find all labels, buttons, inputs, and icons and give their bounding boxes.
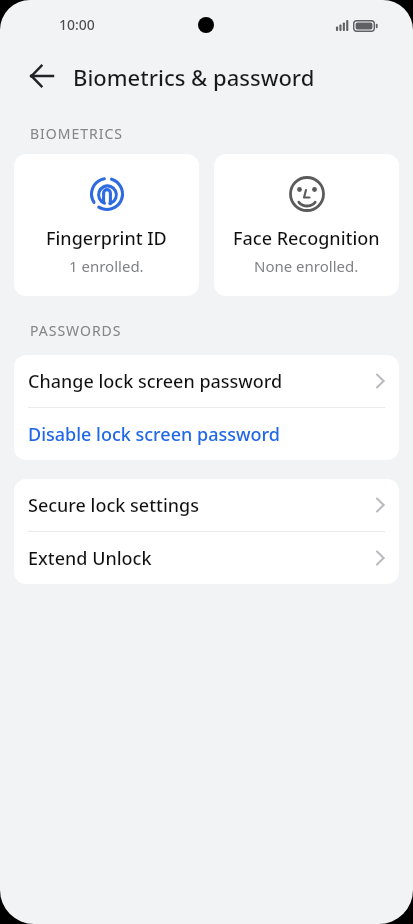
staticText: Secure lock settings	[28, 493, 376, 518]
staticText: 1 enrolled.	[69, 256, 144, 276]
button[interactable]: Disable lock screen password	[14, 408, 399, 460]
button[interactable]: Change lock screen password	[14, 355, 399, 407]
staticText: 10:00	[59, 15, 95, 34]
staticText: Fingerprint ID	[46, 226, 167, 251]
staticText: BIOMETRICS	[30, 124, 124, 143]
staticText: Face Recognition	[233, 226, 380, 251]
button[interactable]: Fingerprint ID	[14, 154, 199, 296]
staticText: None enrolled.	[254, 256, 359, 276]
button[interactable]: Extend Unlock	[14, 532, 399, 584]
staticText: Extend Unlock	[28, 546, 376, 571]
staticText: Disable lock screen password	[28, 422, 385, 447]
staticText: Biometrics & password	[73, 62, 315, 92]
button[interactable]: Secure lock settings	[14, 479, 399, 531]
button[interactable]: Face Recognition	[214, 154, 399, 296]
staticText: Change lock screen password	[28, 369, 376, 394]
button[interactable]	[30, 65, 54, 89]
staticText: PASSWORDS	[30, 321, 122, 340]
